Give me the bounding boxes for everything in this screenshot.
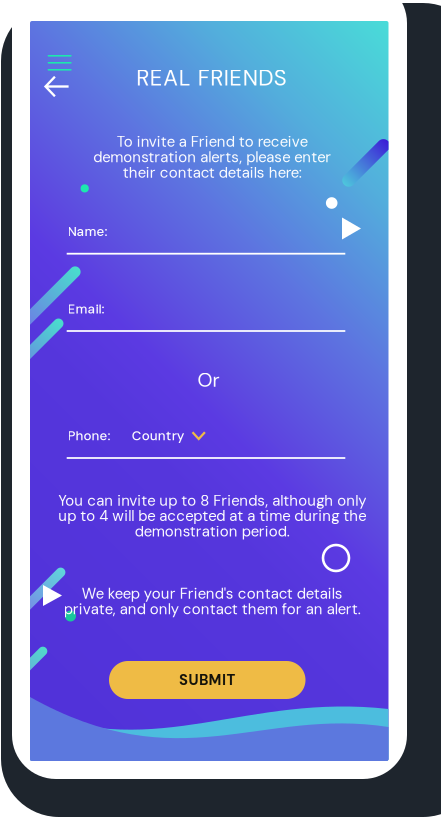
button[interactable]: Country bbox=[132, 427, 212, 444]
staticText: We keep your Friend's contact details pr… bbox=[63, 584, 360, 619]
staticText: Phone: bbox=[68, 427, 111, 444]
staticText: Or bbox=[198, 367, 220, 393]
button[interactable]: SUBMIT bbox=[109, 661, 305, 699]
staticText: Name: bbox=[67, 223, 107, 240]
staticText: To invite a Friend to receive demonstrat… bbox=[93, 132, 331, 182]
staticText: SUBMIT bbox=[179, 670, 235, 690]
staticText: REAL FRIENDS bbox=[136, 64, 287, 92]
staticText: You can invite up to 8 Friends, although… bbox=[58, 491, 366, 541]
button[interactable]: Back bbox=[44, 52, 80, 102]
staticText: Country bbox=[132, 427, 185, 444]
staticText: Email: bbox=[67, 300, 104, 318]
